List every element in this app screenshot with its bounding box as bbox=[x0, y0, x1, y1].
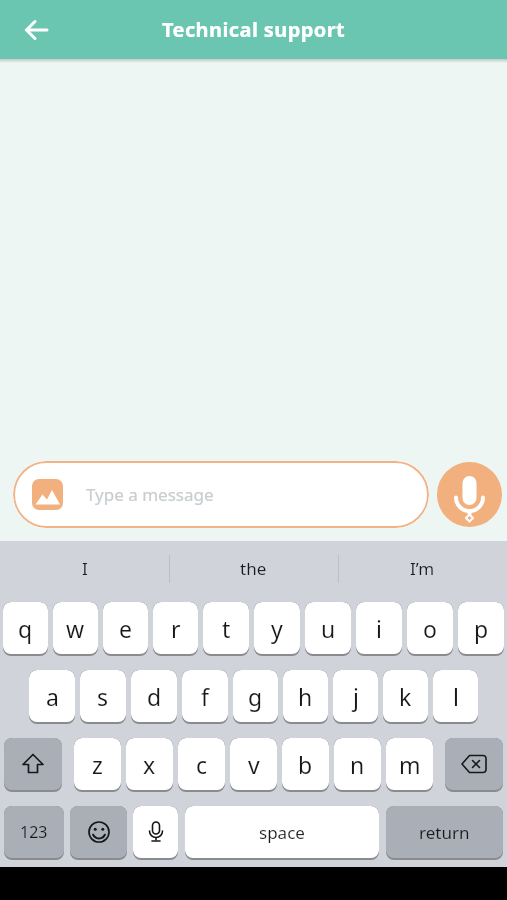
staticText: s bbox=[97, 681, 109, 712]
staticText: k bbox=[399, 681, 412, 712]
staticText: e bbox=[119, 613, 132, 644]
button[interactable]: x bbox=[126, 738, 173, 792]
button[interactable]: i bbox=[356, 602, 402, 656]
button[interactable]: e bbox=[103, 602, 148, 656]
button[interactable]: z bbox=[74, 738, 121, 792]
button[interactable]: b bbox=[282, 738, 329, 792]
staticText: b bbox=[298, 749, 313, 780]
staticText: r bbox=[171, 613, 181, 644]
staticText: Type a message bbox=[86, 483, 214, 506]
button[interactable] bbox=[32, 479, 63, 510]
staticText: x bbox=[143, 749, 156, 780]
button[interactable]: w bbox=[53, 602, 98, 656]
button[interactable]: I’m bbox=[338, 541, 507, 596]
staticText: a bbox=[46, 681, 59, 712]
button[interactable]: j bbox=[333, 670, 378, 724]
button[interactable]: g bbox=[233, 670, 278, 724]
staticText: z bbox=[92, 749, 103, 780]
staticText: o bbox=[423, 613, 437, 644]
button[interactable]: u bbox=[305, 602, 351, 656]
staticText: n bbox=[350, 749, 365, 780]
button[interactable]: c bbox=[178, 738, 225, 792]
staticText: d bbox=[147, 681, 162, 712]
button[interactable]: r bbox=[153, 602, 198, 656]
staticText: v bbox=[248, 749, 260, 780]
staticText: space bbox=[259, 821, 305, 844]
staticText: l bbox=[453, 681, 459, 712]
button[interactable]: Type a message bbox=[13, 461, 429, 528]
staticText: I bbox=[82, 557, 88, 580]
staticText: Technical support bbox=[162, 16, 346, 43]
staticText: w bbox=[66, 613, 85, 644]
button[interactable]: f bbox=[182, 670, 228, 724]
button[interactable]: s bbox=[80, 670, 126, 724]
staticText: y bbox=[271, 613, 283, 644]
staticText: I’m bbox=[410, 557, 435, 580]
button[interactable] bbox=[437, 462, 502, 527]
button[interactable]: v bbox=[230, 738, 277, 792]
staticText: g bbox=[248, 681, 263, 712]
staticText: i bbox=[376, 613, 382, 644]
button[interactable]: y bbox=[254, 602, 300, 656]
button[interactable]: 123 bbox=[4, 806, 64, 860]
staticText: t bbox=[222, 613, 231, 644]
button[interactable]: l bbox=[433, 670, 478, 724]
button[interactable]: n bbox=[334, 738, 381, 792]
staticText: h bbox=[298, 681, 313, 712]
button[interactable] bbox=[445, 738, 503, 792]
staticText: p bbox=[474, 613, 489, 644]
staticText: j bbox=[353, 681, 359, 712]
button[interactable]: p bbox=[458, 602, 504, 656]
button[interactable]: a bbox=[29, 670, 75, 724]
staticText: 123 bbox=[20, 821, 48, 843]
button[interactable]: k bbox=[383, 670, 428, 724]
staticText: q bbox=[18, 613, 33, 644]
button[interactable]: t bbox=[203, 602, 249, 656]
button[interactable]: h bbox=[283, 670, 328, 724]
button[interactable] bbox=[4, 738, 62, 792]
staticText: m bbox=[399, 749, 421, 780]
button[interactable]: m bbox=[386, 738, 433, 792]
staticText: the bbox=[240, 557, 267, 580]
button[interactable]: d bbox=[131, 670, 177, 724]
button[interactable]: o bbox=[407, 602, 453, 656]
button[interactable] bbox=[133, 806, 178, 860]
staticText: f bbox=[201, 681, 209, 712]
staticText: u bbox=[321, 613, 336, 644]
button[interactable] bbox=[18, 11, 56, 49]
button[interactable] bbox=[70, 806, 127, 860]
button[interactable]: return bbox=[386, 806, 503, 860]
staticText: return bbox=[419, 821, 470, 844]
button[interactable]: I bbox=[0, 541, 169, 596]
staticText: c bbox=[196, 749, 208, 780]
button[interactable]: q bbox=[3, 602, 48, 656]
button[interactable]: space bbox=[185, 806, 379, 860]
button[interactable]: the bbox=[169, 541, 338, 596]
